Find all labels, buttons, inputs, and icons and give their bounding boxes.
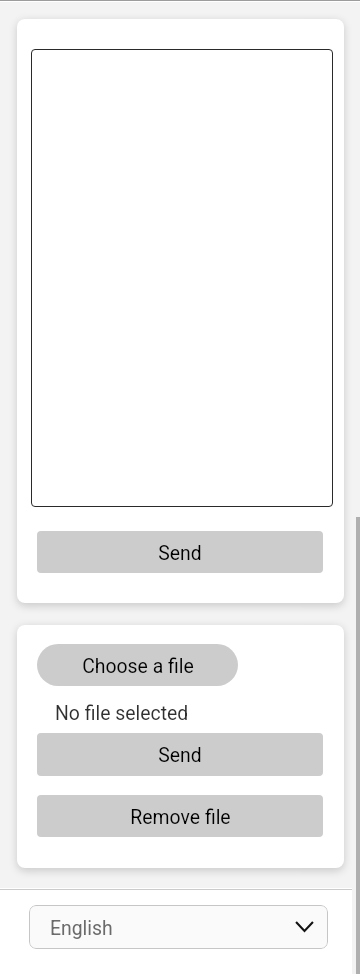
staticText: Send (158, 744, 202, 767)
button[interactable]: Send (37, 531, 323, 573)
staticText: No file selected (55, 702, 189, 725)
button[interactable]: Send (37, 733, 323, 776)
staticText: Choose a file (82, 655, 194, 678)
button[interactable]: Remove file (37, 795, 323, 837)
button[interactable]: English (29, 905, 328, 949)
button[interactable]: Choose a file (37, 644, 238, 686)
staticText: Remove file (130, 806, 231, 829)
staticText: English (50, 917, 113, 940)
staticText: Send (158, 542, 202, 565)
button[interactable]: Message text area (31, 49, 333, 507)
other: Expand language list (295, 921, 314, 932)
